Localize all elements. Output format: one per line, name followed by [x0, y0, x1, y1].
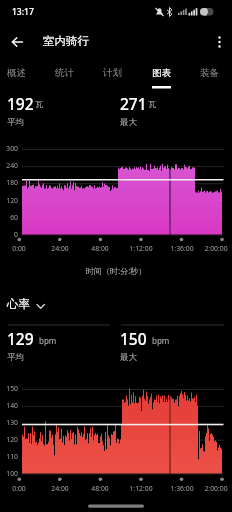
staticText: 时间（时:分:秒） — [86, 265, 147, 276]
staticText: 24:00 — [40, 244, 80, 253]
staticText: 1:36:00 — [162, 244, 202, 253]
staticText: 1:12:00 — [121, 244, 161, 253]
staticText: 300 — [0, 144, 18, 153]
staticText: 0:00 — [0, 244, 39, 253]
staticText: 平均 — [7, 117, 24, 128]
staticText: 平均 — [7, 352, 24, 363]
staticText: 统计 — [55, 67, 74, 79]
button[interactable] — [210, 30, 230, 50]
staticText: 48:00 — [80, 244, 120, 253]
staticText: 13:17 — [12, 6, 34, 18]
staticText: 概述 — [7, 67, 26, 79]
staticText: 0 — [0, 230, 18, 239]
staticText: 130 — [0, 418, 18, 427]
staticText: 129 — [7, 328, 34, 349]
staticText: 240 — [0, 161, 18, 170]
staticText: 120 — [0, 435, 18, 444]
button[interactable]: 统计 — [41, 56, 87, 89]
button[interactable]: 图表 — [138, 56, 184, 89]
staticText: bpm — [39, 335, 57, 346]
staticText: bpm — [152, 335, 170, 346]
staticText: 瓦 — [148, 99, 156, 109]
button[interactable]: 概述 — [0, 56, 39, 89]
staticText: 48:00 — [80, 484, 120, 493]
staticText: 150 — [0, 384, 18, 393]
staticText: 271 — [120, 93, 147, 114]
staticText: 装备 — [200, 67, 219, 79]
staticText: 瓦 — [35, 99, 43, 109]
staticText: 室内骑行 — [43, 34, 89, 48]
button[interactable] — [0, 295, 232, 315]
staticText: 计划 — [103, 67, 122, 79]
staticText: 110 — [0, 452, 18, 461]
staticText: 图表 — [152, 67, 171, 79]
button[interactable]: 计划 — [89, 56, 135, 89]
staticText: 120 — [0, 196, 18, 205]
staticText: 最大 — [120, 352, 137, 363]
staticText: 心率 — [7, 297, 30, 311]
button[interactable]: 装备 — [186, 56, 232, 89]
staticText: 2:00:00 — [196, 484, 232, 493]
staticText: 1:36:00 — [162, 484, 202, 493]
staticText: 24:00 — [40, 484, 80, 493]
staticText: 最大 — [120, 117, 137, 128]
staticText: 180 — [0, 178, 18, 187]
staticText: 0:00 — [0, 484, 39, 493]
staticText: 60 — [0, 213, 18, 222]
button[interactable] — [6, 30, 30, 54]
staticText: 150 — [120, 328, 147, 349]
staticText: 140 — [0, 401, 18, 410]
staticText: 1:12:00 — [121, 484, 161, 493]
staticText: 2:00:00 — [196, 244, 232, 253]
staticText: 192 — [7, 93, 34, 114]
staticText: 100 — [0, 469, 18, 478]
